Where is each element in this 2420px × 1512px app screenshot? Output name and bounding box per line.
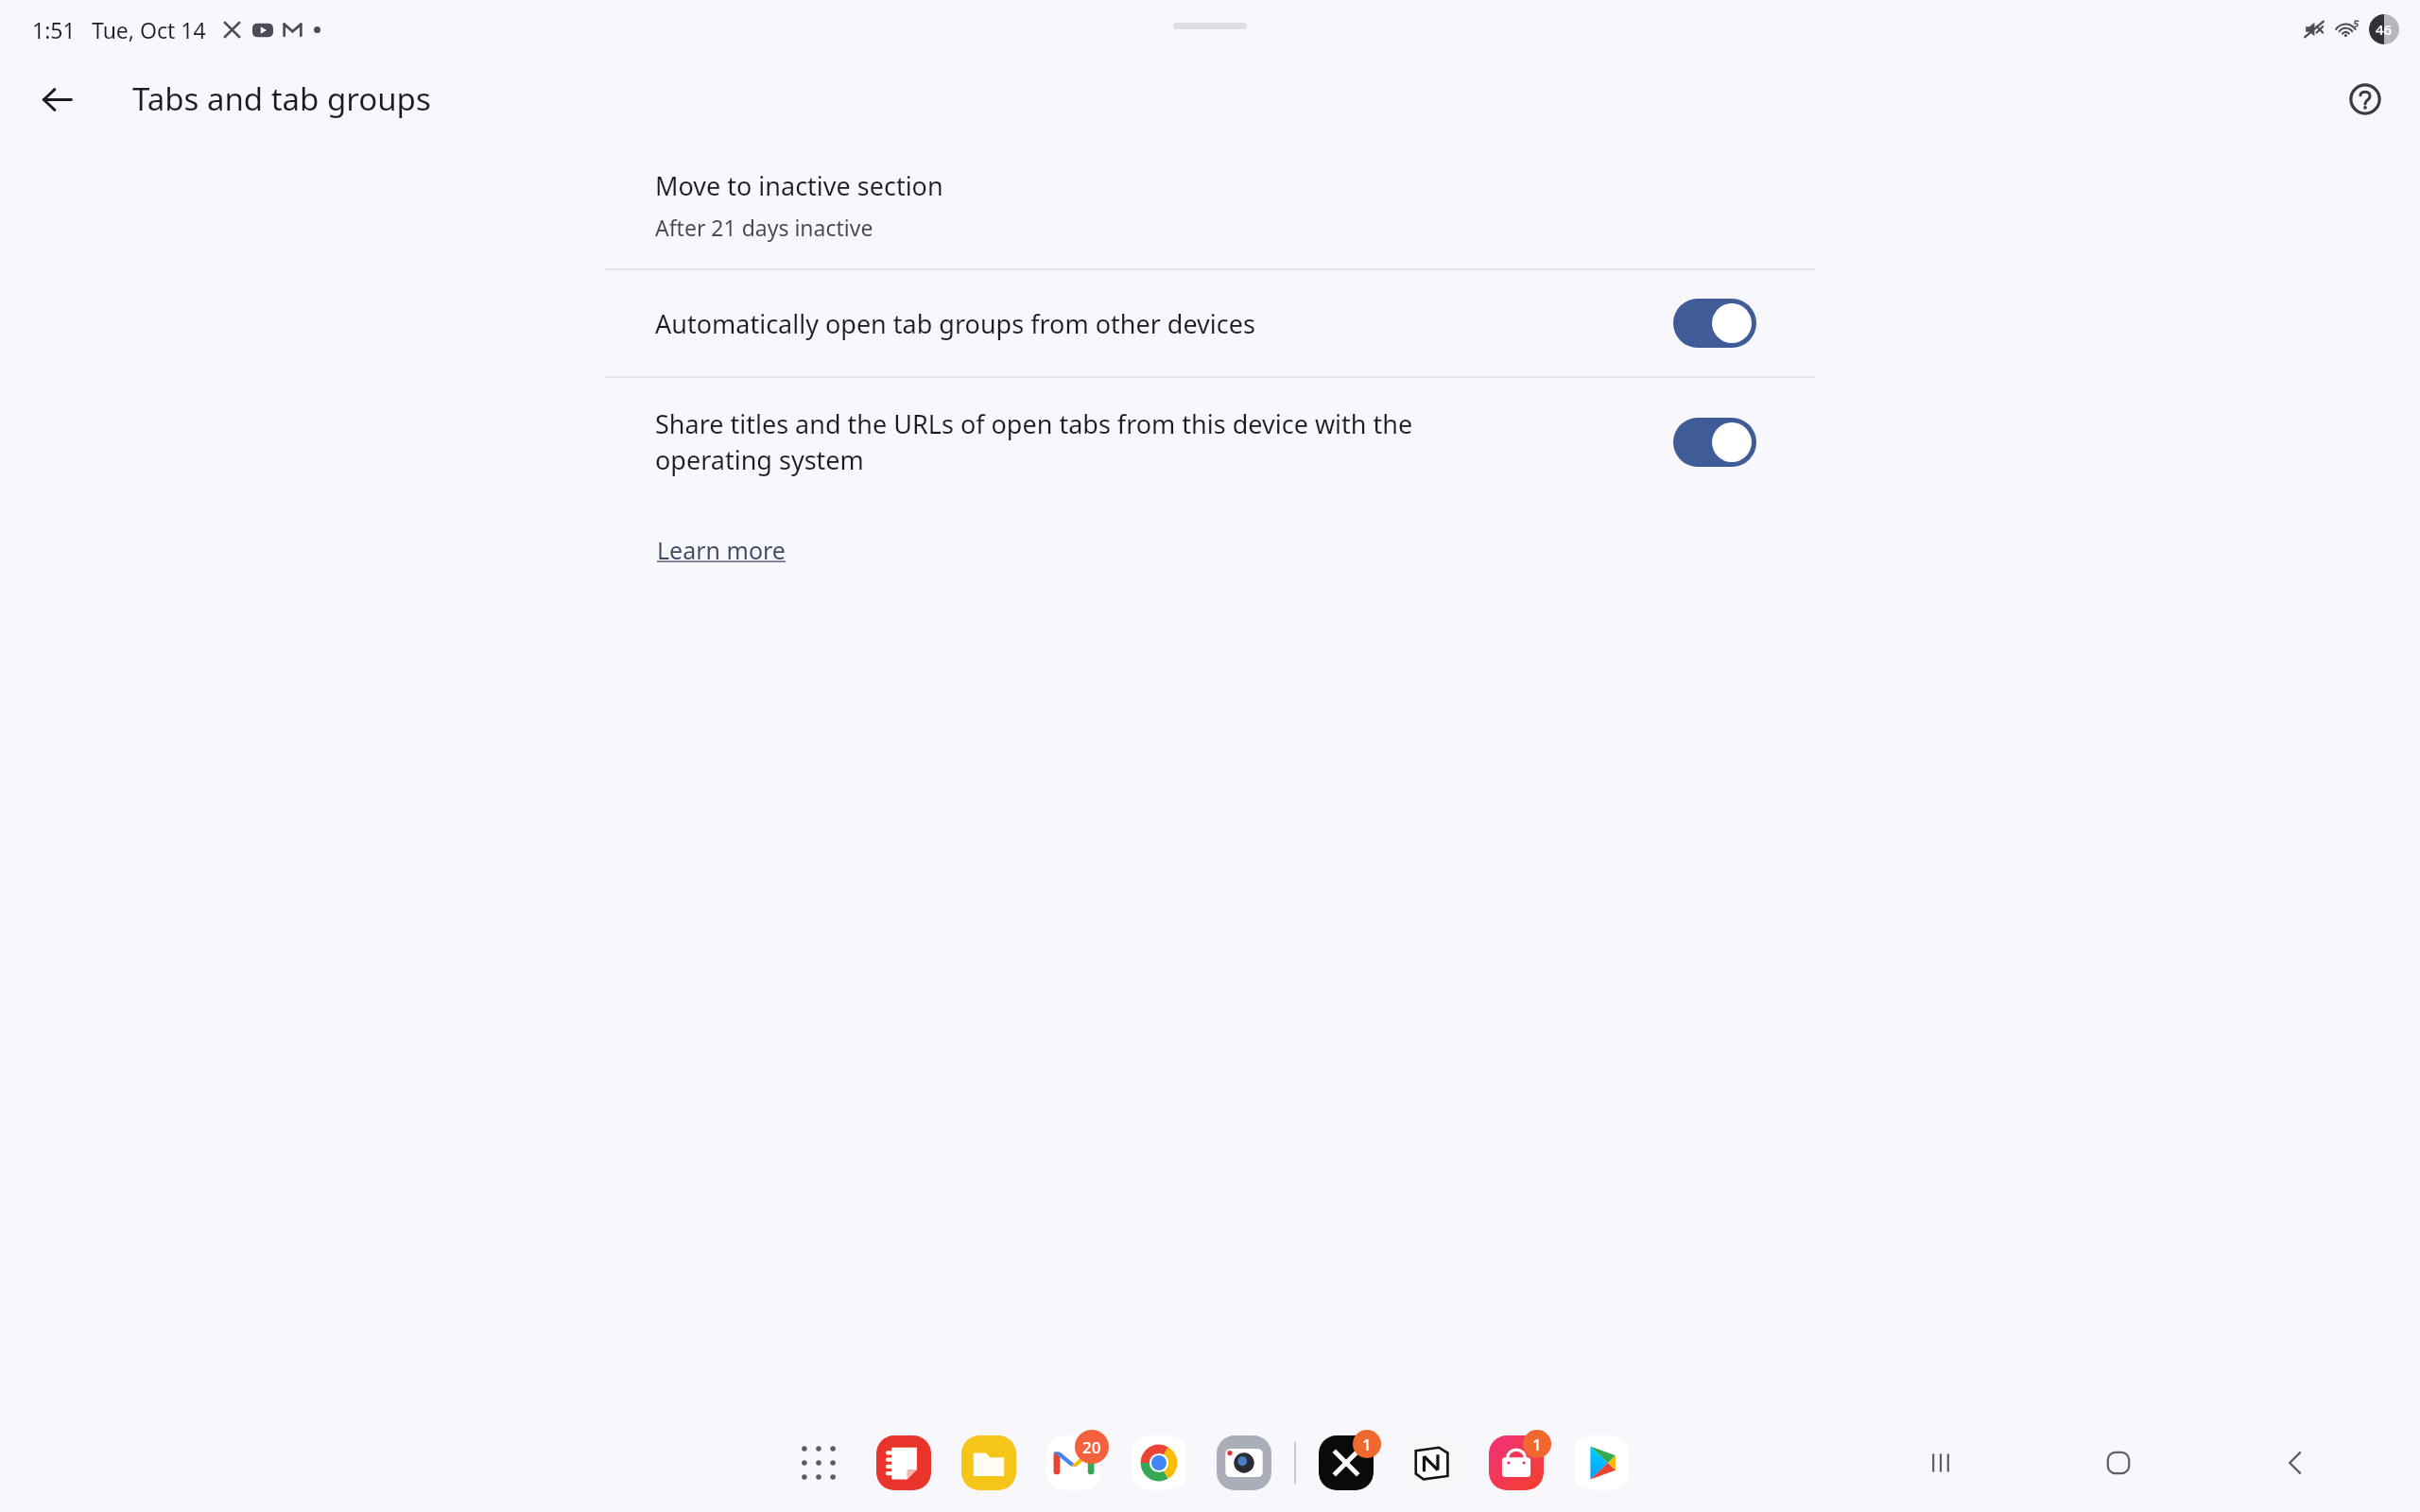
staticText: Share titles and the URLs of open tabs f… [655, 406, 1413, 477]
button[interactable]: Apps [789, 1434, 848, 1492]
button[interactable]: Automatically open tab groups from other… [605, 270, 1815, 376]
staticText: 1 [1532, 1434, 1542, 1455]
button[interactable]: Play Store [1572, 1434, 1631, 1492]
button[interactable]: Notion [1402, 1434, 1461, 1492]
button[interactable]: X [1317, 1434, 1375, 1492]
staticText: 46 [2376, 20, 2393, 39]
button[interactable]: Home [2085, 1430, 2152, 1496]
button[interactable]: Chrome [1130, 1434, 1188, 1492]
staticText: 20 [1082, 1436, 1101, 1458]
button[interactable]: Help [2339, 73, 2392, 126]
button[interactable]: Samsung Notes [874, 1434, 933, 1492]
staticText: Tue, Oct 14 [92, 15, 206, 44]
staticText: Tabs and tab groups [132, 77, 431, 120]
button[interactable]: Toggle on [1673, 299, 1756, 348]
button[interactable]: Move to inactive section [605, 139, 1815, 268]
staticText: After 21 days inactive [655, 213, 873, 242]
staticText: Automatically open tab groups from other… [655, 306, 1255, 341]
button[interactable]: Camera [1215, 1434, 1273, 1492]
staticText: Learn more [657, 534, 786, 566]
button[interactable]: My Files [959, 1434, 1018, 1492]
staticText: 1:51 [32, 15, 76, 44]
staticText: Move to inactive section [655, 168, 943, 203]
button[interactable]: Back [32, 75, 81, 124]
button[interactable]: Galaxy Store [1487, 1434, 1546, 1492]
button[interactable]: Learn more [655, 528, 787, 572]
button[interactable]: Toggle on [1673, 418, 1756, 467]
button[interactable]: Share titles and the URLs of open tabs f… [605, 378, 1815, 506]
button[interactable]: Back [2263, 1430, 2329, 1496]
button[interactable]: Gmail [1045, 1434, 1103, 1492]
button[interactable]: Recents [1908, 1430, 1974, 1496]
staticText: 1 [1362, 1434, 1372, 1455]
